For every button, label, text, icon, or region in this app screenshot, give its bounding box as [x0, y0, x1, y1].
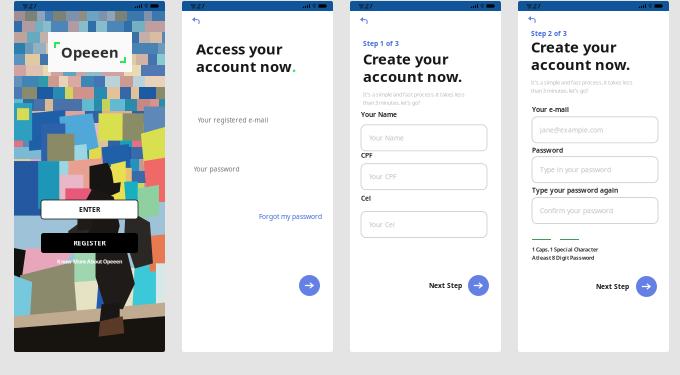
staticText: Your Cel — [369, 220, 395, 229]
staticText: It's a simple and fast process, it takes… — [531, 79, 633, 86]
staticText: 1 Caps, 1 Special Character — [532, 246, 598, 253]
staticText: It's a simple and fast process, it takes… — [363, 91, 465, 98]
staticText: CPF — [361, 151, 373, 160]
staticText: Step 1 of 3 — [363, 39, 399, 48]
staticText: jane@example.com — [540, 125, 603, 134]
staticText: Next Step — [429, 281, 462, 290]
button[interactable]: Back — [525, 13, 540, 26]
button[interactable]: Your CPF — [361, 164, 487, 190]
staticText: REGISTER — [73, 239, 105, 247]
staticText: Create your — [363, 49, 449, 68]
staticText: Access your — [196, 39, 283, 58]
staticText: Your registered e-mail — [197, 116, 268, 124]
button[interactable]: ENTER — [41, 200, 138, 219]
button[interactable]: Your password — [193, 160, 315, 178]
staticText: account now. — [363, 66, 462, 86]
button[interactable]: Next step — [468, 275, 489, 296]
staticText: Your password — [193, 165, 239, 173]
button[interactable]: Back — [357, 14, 372, 27]
staticText: 9:27 — [359, 2, 373, 10]
button[interactable]: Next Step — [429, 281, 462, 290]
staticText: Next Step — [596, 282, 629, 291]
staticText: Step 2 of 3 — [531, 29, 567, 38]
button[interactable]: Next step — [636, 276, 657, 297]
staticText: Forgot my password — [259, 212, 322, 221]
button[interactable]: Know More About Opeeen — [57, 258, 122, 265]
button[interactable]: Your registered e-mail — [197, 111, 319, 129]
button[interactable]: Your Cel — [361, 212, 487, 238]
staticText: ENTER — [79, 205, 100, 214]
staticText: 9:27 — [191, 2, 205, 10]
button[interactable]: Forgot my password — [259, 212, 322, 221]
staticText: Atleast 8 Digit Password — [532, 254, 594, 261]
button[interactable]: Step 2 of 3 — [531, 29, 567, 38]
staticText: Type your password again — [532, 186, 618, 195]
button[interactable]: Back — [189, 14, 204, 27]
button[interactable]: Step 1 of 3 — [363, 39, 399, 48]
staticText: account now — [196, 56, 292, 76]
staticText: 9:27 — [23, 2, 37, 10]
staticText: Your Name — [361, 110, 397, 119]
staticText: than 3 minutes, let's go? — [363, 99, 420, 106]
button[interactable]: Type in your password — [532, 157, 658, 183]
staticText: Create your — [531, 37, 617, 56]
staticText: 9:27 — [527, 2, 541, 10]
staticText: . — [292, 56, 296, 76]
staticText: Opeeen — [61, 42, 119, 62]
staticText: Password — [532, 146, 563, 155]
staticText: Type in your password — [540, 165, 611, 174]
staticText: Your e-mail — [532, 105, 569, 114]
button[interactable]: jane@example.com — [532, 117, 658, 143]
staticText: account now. — [531, 54, 630, 74]
button[interactable]: Next step — [299, 275, 320, 296]
staticText: than 3 minutes, let's go? — [531, 87, 588, 94]
button[interactable]: Your Name — [361, 125, 487, 151]
button[interactable]: Next Step — [596, 282, 629, 291]
staticText: Your CPF — [369, 172, 396, 181]
staticText: Know More About Opeeen — [57, 258, 122, 265]
staticText: Confirm your password — [540, 206, 613, 215]
staticText: Your Name — [369, 133, 404, 142]
staticText: Cel — [361, 194, 371, 203]
button[interactable]: REGISTER — [41, 233, 138, 253]
button[interactable]: Confirm your password — [532, 198, 658, 224]
